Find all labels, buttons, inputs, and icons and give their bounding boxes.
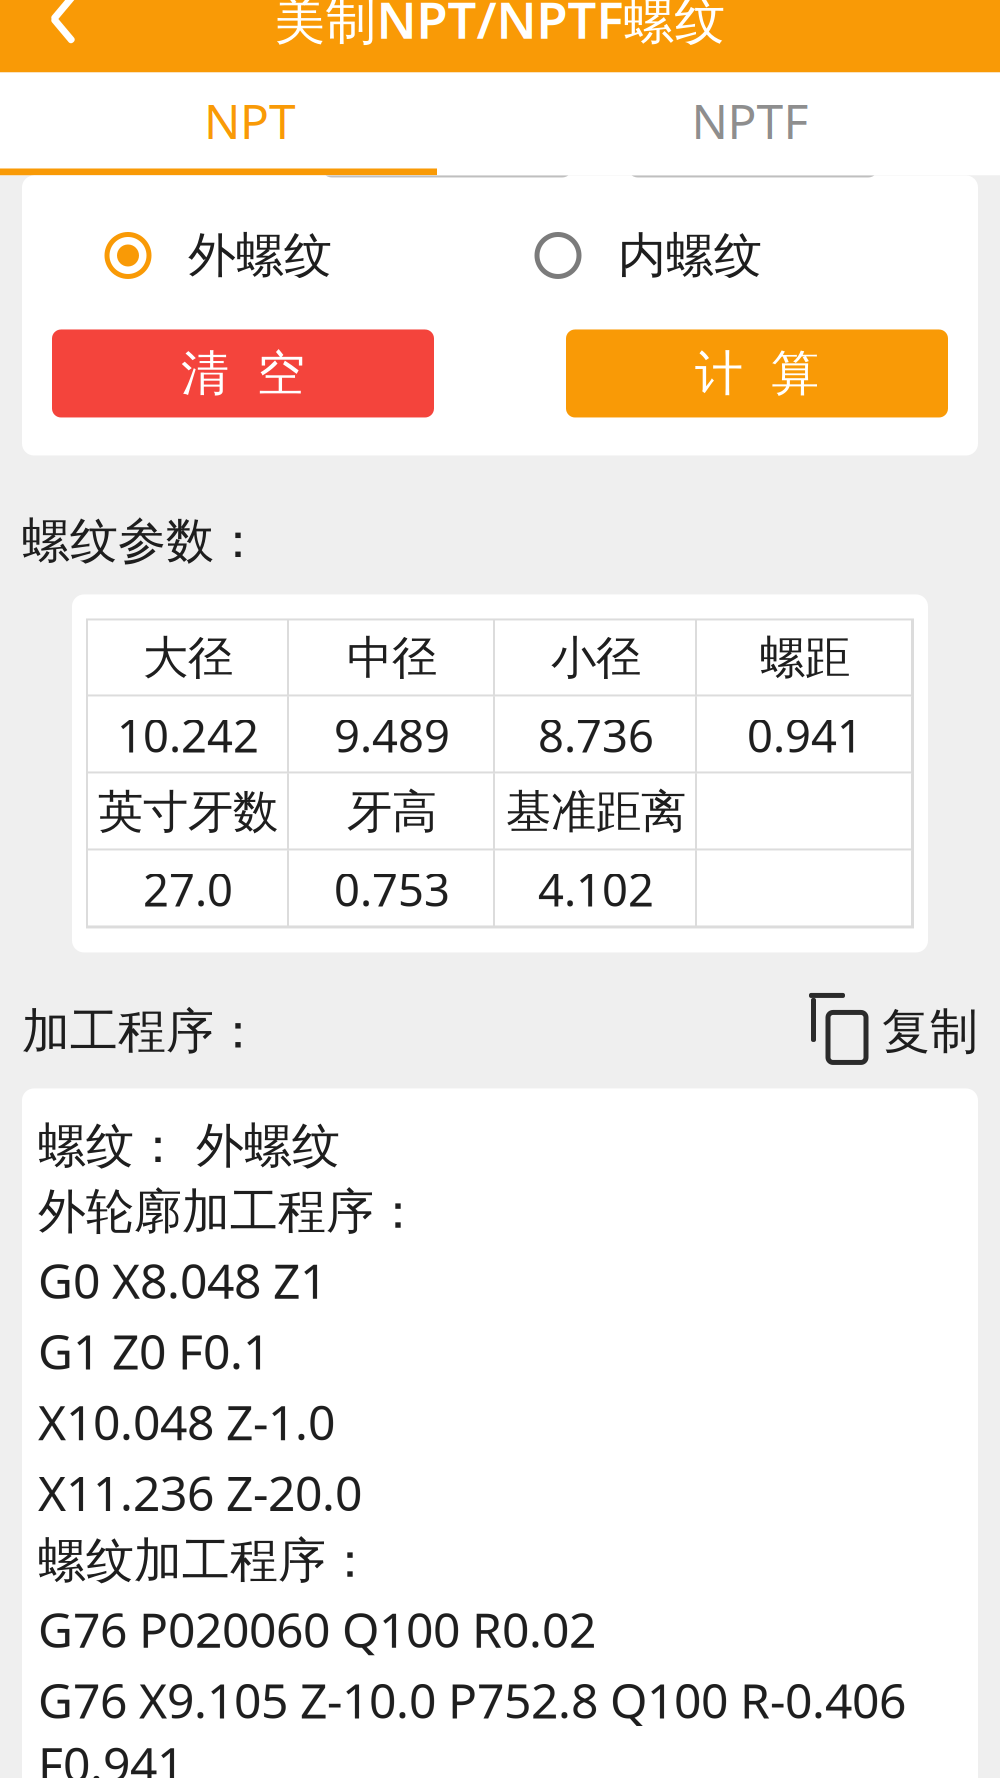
button[interactable]: Back	[20, 0, 106, 65]
staticText: 0.753	[334, 859, 450, 919]
staticText: 加工程序：	[22, 1002, 262, 1061]
staticText: 8.736	[538, 705, 654, 765]
staticText: X11.236 Z-20.0	[38, 1461, 362, 1524]
staticText: G1 Z0 F0.1	[38, 1319, 270, 1383]
staticText: 清 空	[181, 344, 305, 403]
button[interactable]: NPTF	[500, 72, 1000, 168]
staticText: 螺距	[760, 630, 850, 686]
button[interactable]: 内螺纹	[536, 215, 916, 295]
staticText: 外螺纹	[188, 226, 332, 285]
staticText: NPTF	[691, 89, 808, 152]
button[interactable]: 复制	[814, 996, 978, 1066]
button[interactable]: 外螺纹	[106, 215, 506, 295]
staticText: 27.0	[143, 859, 233, 919]
staticText: 英寸牙数	[98, 784, 278, 840]
staticText: G0 X8.048 Z1	[38, 1248, 327, 1312]
staticText: 螺纹： 外螺纹	[38, 1116, 340, 1175]
staticText: 复制	[882, 1002, 978, 1061]
staticText: 0.941	[747, 705, 863, 765]
staticText: X10.048 Z-1.0	[38, 1390, 335, 1453]
staticText: 4.102	[538, 859, 654, 919]
staticText: 9.489	[334, 705, 450, 765]
staticText: 计 算	[695, 344, 819, 403]
staticText: G76 P020060 Q100 R0.02	[38, 1597, 596, 1661]
button[interactable]: 计 算	[566, 329, 948, 417]
button[interactable]: NPT	[0, 72, 500, 168]
staticText: 螺纹加工程序：	[38, 1531, 374, 1590]
staticText: 大径	[143, 630, 233, 686]
staticText: G76 X9.105 Z-10.0 P752.8 Q100 R-0.406 F0…	[38, 1668, 906, 1778]
staticText: 10.242	[117, 705, 259, 765]
staticText: 内螺纹	[618, 226, 762, 285]
staticText: 外轮廓加工程序：	[38, 1182, 422, 1241]
staticText: 美制NPT/NPTF螺纹	[274, 0, 725, 53]
staticText: 螺纹参数：	[22, 511, 262, 570]
staticText: NPT	[204, 89, 296, 152]
button[interactable]: 清 空	[52, 329, 434, 417]
staticText: 中径	[347, 630, 437, 686]
staticText: 基准距离	[506, 784, 686, 840]
staticText: 小径	[551, 630, 641, 686]
staticText: 牙高	[347, 784, 437, 840]
